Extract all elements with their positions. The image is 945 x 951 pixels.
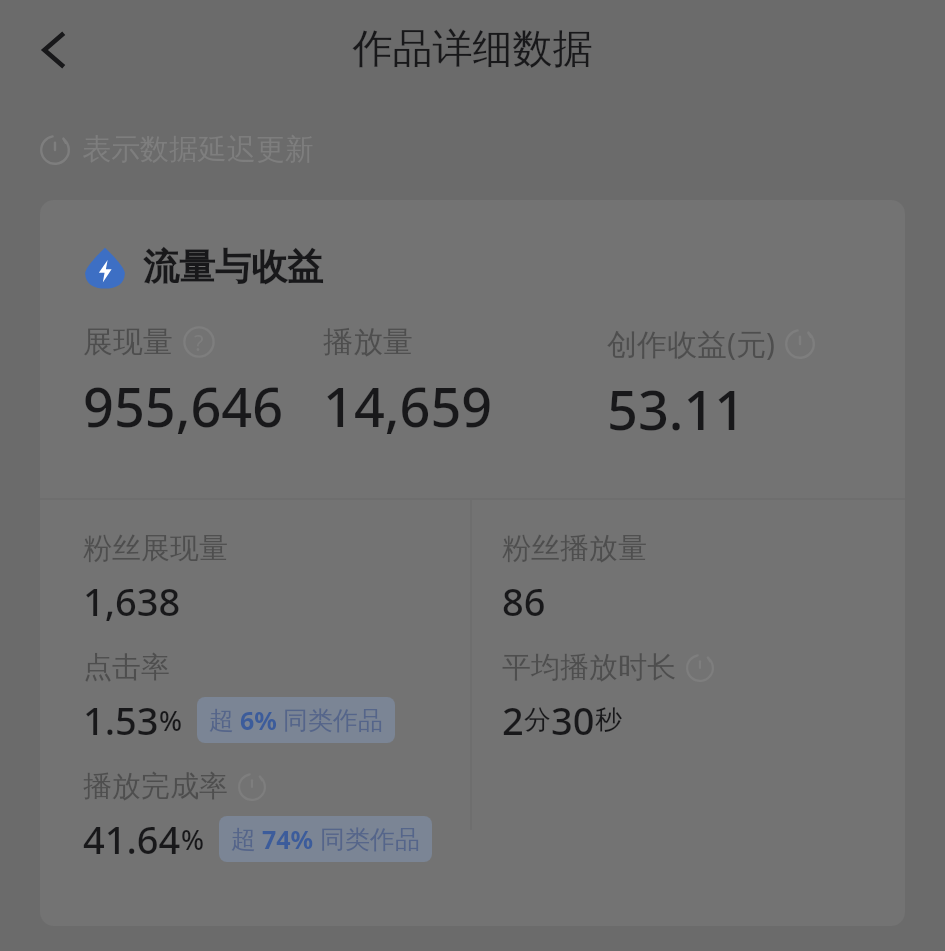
button[interactable]: 点击率 [83, 649, 395, 746]
button[interactable]: 粉丝展现量 [83, 530, 228, 627]
staticText: 表示数据延迟更新 [82, 131, 314, 168]
staticText: 1,638 [83, 575, 181, 627]
button[interactable]: 粉丝播放量 [502, 530, 647, 627]
staticText: 1.53 [83, 694, 159, 746]
staticText: % [159, 702, 183, 739]
staticText: 粉丝展现量 [83, 530, 228, 567]
staticText: 955,646 [83, 369, 284, 443]
staticText: ? [194, 327, 204, 357]
staticText: % [181, 821, 205, 858]
staticText: 同类作品 [320, 824, 420, 855]
button[interactable]: 播放完成率 [83, 768, 432, 865]
staticText: 86 [502, 575, 546, 627]
staticText: 展现量 [83, 323, 173, 361]
button[interactable]: Info [183, 326, 215, 358]
button[interactable]: 平均播放时长 [502, 649, 714, 746]
button[interactable]: 展现量 [83, 323, 323, 443]
button[interactable]: 创作收益(元) [607, 323, 905, 446]
staticText: 分 [524, 703, 551, 737]
staticText: 平均播放时长 [502, 649, 676, 686]
staticText: 播放量 [323, 323, 413, 361]
button[interactable]: 播放量 [323, 323, 607, 443]
staticText: 超 [209, 705, 234, 736]
staticText: 流量与收益 [143, 244, 323, 289]
staticText: 作品详细数据 [0, 23, 945, 73]
button[interactable]: Back [18, 14, 90, 86]
staticText: 6% [240, 703, 277, 737]
staticText: 创作收益(元) [607, 323, 775, 364]
button[interactable]: 超 [219, 816, 432, 862]
staticText: 播放完成率 [83, 768, 228, 805]
staticText: 秒 [595, 703, 622, 737]
staticText: 53.11 [607, 372, 746, 446]
staticText: 14,659 [323, 369, 493, 443]
staticText: 41.64 [83, 813, 181, 865]
staticText: 74% [262, 822, 314, 856]
staticText: 点击率 [83, 649, 170, 686]
button[interactable]: 超 [197, 697, 395, 743]
staticText: 同类作品 [283, 705, 383, 736]
staticText: 超 [231, 824, 256, 855]
staticText: 2 [502, 694, 524, 746]
staticText: 30 [551, 694, 595, 746]
staticText: 粉丝播放量 [502, 530, 647, 567]
